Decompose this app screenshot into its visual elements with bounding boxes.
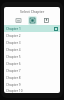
staticText: Chapter 9 (6, 83, 58, 87)
button[interactable]: List view (14, 16, 23, 25)
button[interactable]: Chapter 8 (4, 74, 60, 81)
staticText: Chapter 10 (6, 89, 58, 93)
staticText: Select Chapter (20, 9, 45, 14)
button[interactable]: Grid view (28, 16, 37, 25)
staticText: Chapter 3 (6, 41, 58, 45)
button[interactable]: Chapter 9 (4, 81, 60, 88)
button[interactable]: Chapter 5 (4, 53, 60, 60)
staticText: Chapter 2 (6, 34, 58, 38)
staticText: Chapter 5 (6, 55, 58, 59)
staticText: Chapter 1 (6, 27, 54, 31)
staticText: Chapter 4 (6, 48, 58, 52)
button[interactable]: Chapter 4 (4, 46, 60, 53)
button[interactable]: Chapter 2 (4, 32, 60, 39)
button[interactable]: Chapter 10 (4, 88, 60, 93)
staticText: Chapter 6 (6, 62, 58, 66)
staticText: Chapter 7 (6, 69, 58, 73)
button[interactable]: Chapter 1 (4, 25, 60, 32)
button[interactable]: Chapter 7 (4, 67, 60, 74)
button[interactable]: Chapter 6 (4, 60, 60, 67)
button[interactable]: Bookmark view (42, 16, 51, 25)
staticText: Chapter 8 (6, 76, 58, 80)
button[interactable]: Chapter 3 (4, 39, 60, 46)
